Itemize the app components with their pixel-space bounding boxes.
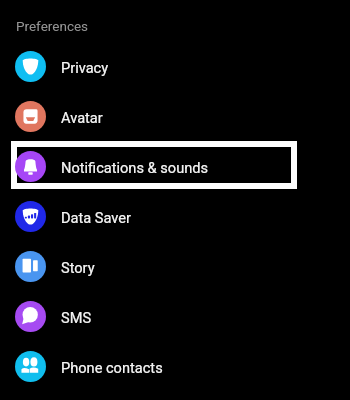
other: Phone contacts bbox=[15, 351, 46, 382]
button[interactable]: SMS bbox=[0, 291, 350, 341]
staticText: Phone contacts bbox=[61, 359, 163, 376]
button[interactable]: Notifications & sounds bbox=[0, 141, 350, 191]
staticText: SMS bbox=[61, 309, 92, 326]
staticText: Avatar bbox=[61, 109, 103, 126]
staticText: Story bbox=[61, 259, 95, 276]
button[interactable]: Story bbox=[0, 241, 350, 291]
button[interactable]: Privacy bbox=[0, 41, 350, 91]
staticText: Notifications & sounds bbox=[61, 159, 208, 176]
staticText: Privacy bbox=[61, 59, 109, 76]
other: Avatar bbox=[15, 101, 46, 132]
staticText: Data Saver bbox=[61, 209, 132, 226]
button[interactable]: Phone contacts bbox=[0, 341, 350, 391]
other: SMS bbox=[15, 301, 46, 332]
other: Story bbox=[15, 251, 46, 282]
button[interactable]: Avatar bbox=[0, 91, 350, 141]
button[interactable]: Data Saver bbox=[0, 191, 350, 241]
staticText: Preferences bbox=[16, 18, 89, 34]
other: Notifications & sounds bbox=[15, 151, 46, 182]
other: Data Saver bbox=[15, 201, 46, 232]
other: Privacy bbox=[15, 51, 46, 82]
